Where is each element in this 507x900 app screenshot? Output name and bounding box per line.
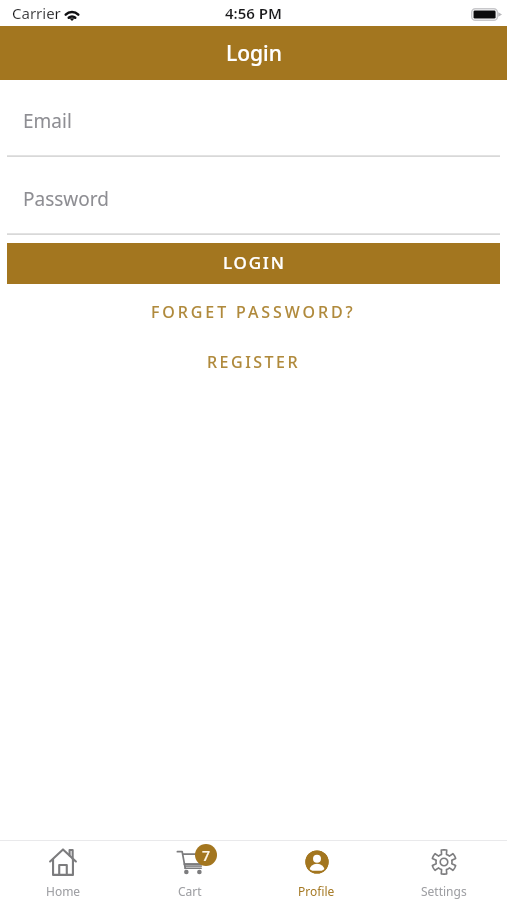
button[interactable]: Home [0,841,126,900]
staticText: REGISTER [207,351,301,373]
staticText: Login [226,39,282,68]
button[interactable]: Email [7,98,500,157]
button[interactable]: Password [7,176,500,235]
button[interactable]: FORGET PASSWORD? [141,295,366,329]
staticText: Password [23,186,109,212]
staticText: 7 [202,846,211,865]
button[interactable]: Cart [126,841,253,900]
staticText: 4:56 PM [225,3,282,23]
button[interactable]: Settings [380,841,507,900]
staticText: Email [23,108,72,134]
staticText: FORGET PASSWORD? [151,301,356,323]
button[interactable]: Profile [253,841,380,900]
staticText: Carrier [12,3,61,23]
staticText: Cart [178,883,202,899]
staticText: LOGIN [223,251,286,274]
button[interactable]: REGISTER [197,345,311,379]
staticText: Home [46,883,81,899]
button[interactable]: LOGIN [7,243,500,284]
staticText: Profile [298,883,335,899]
staticText: Settings [421,883,467,899]
